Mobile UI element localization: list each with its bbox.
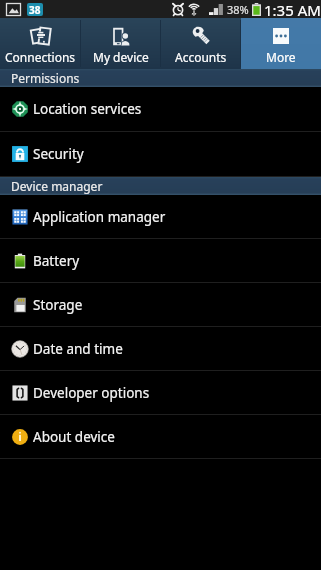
- button[interactable]: Security: [0, 132, 321, 177]
- button[interactable]: Battery: [0, 239, 321, 283]
- button[interactable]: About device: [0, 415, 321, 459]
- button[interactable]: Accounts: [161, 18, 241, 69]
- staticText: Security: [33, 145, 84, 163]
- staticText: Battery: [33, 252, 80, 270]
- staticText: Storage: [33, 296, 83, 314]
- staticText: Device manager: [11, 178, 103, 194]
- button[interactable]: Application manager: [0, 195, 321, 239]
- staticText: 38%: [227, 2, 249, 17]
- staticText: 38: [29, 3, 41, 16]
- staticText: Application manager: [33, 208, 166, 226]
- button[interactable]: Storage: [0, 283, 321, 327]
- button[interactable]: Developer options: [0, 371, 321, 415]
- staticText: Accounts: [175, 49, 227, 65]
- staticText: Location services: [33, 100, 142, 118]
- button[interactable]: More: [241, 18, 321, 69]
- button[interactable]: Date and time: [0, 327, 321, 371]
- staticText: Connections: [5, 49, 76, 65]
- staticText: Date and time: [33, 340, 123, 358]
- other: More: [271, 26, 291, 46]
- staticText: My device: [93, 49, 149, 65]
- staticText: Developer options: [33, 384, 150, 402]
- staticText: About device: [33, 428, 115, 446]
- button[interactable]: Location services: [0, 87, 321, 132]
- button[interactable]: Connections: [0, 18, 81, 69]
- staticText: More: [266, 49, 296, 65]
- staticText: 1:35 AM: [264, 0, 321, 18]
- button[interactable]: My device: [81, 18, 161, 69]
- staticText: Permissions: [11, 70, 80, 86]
